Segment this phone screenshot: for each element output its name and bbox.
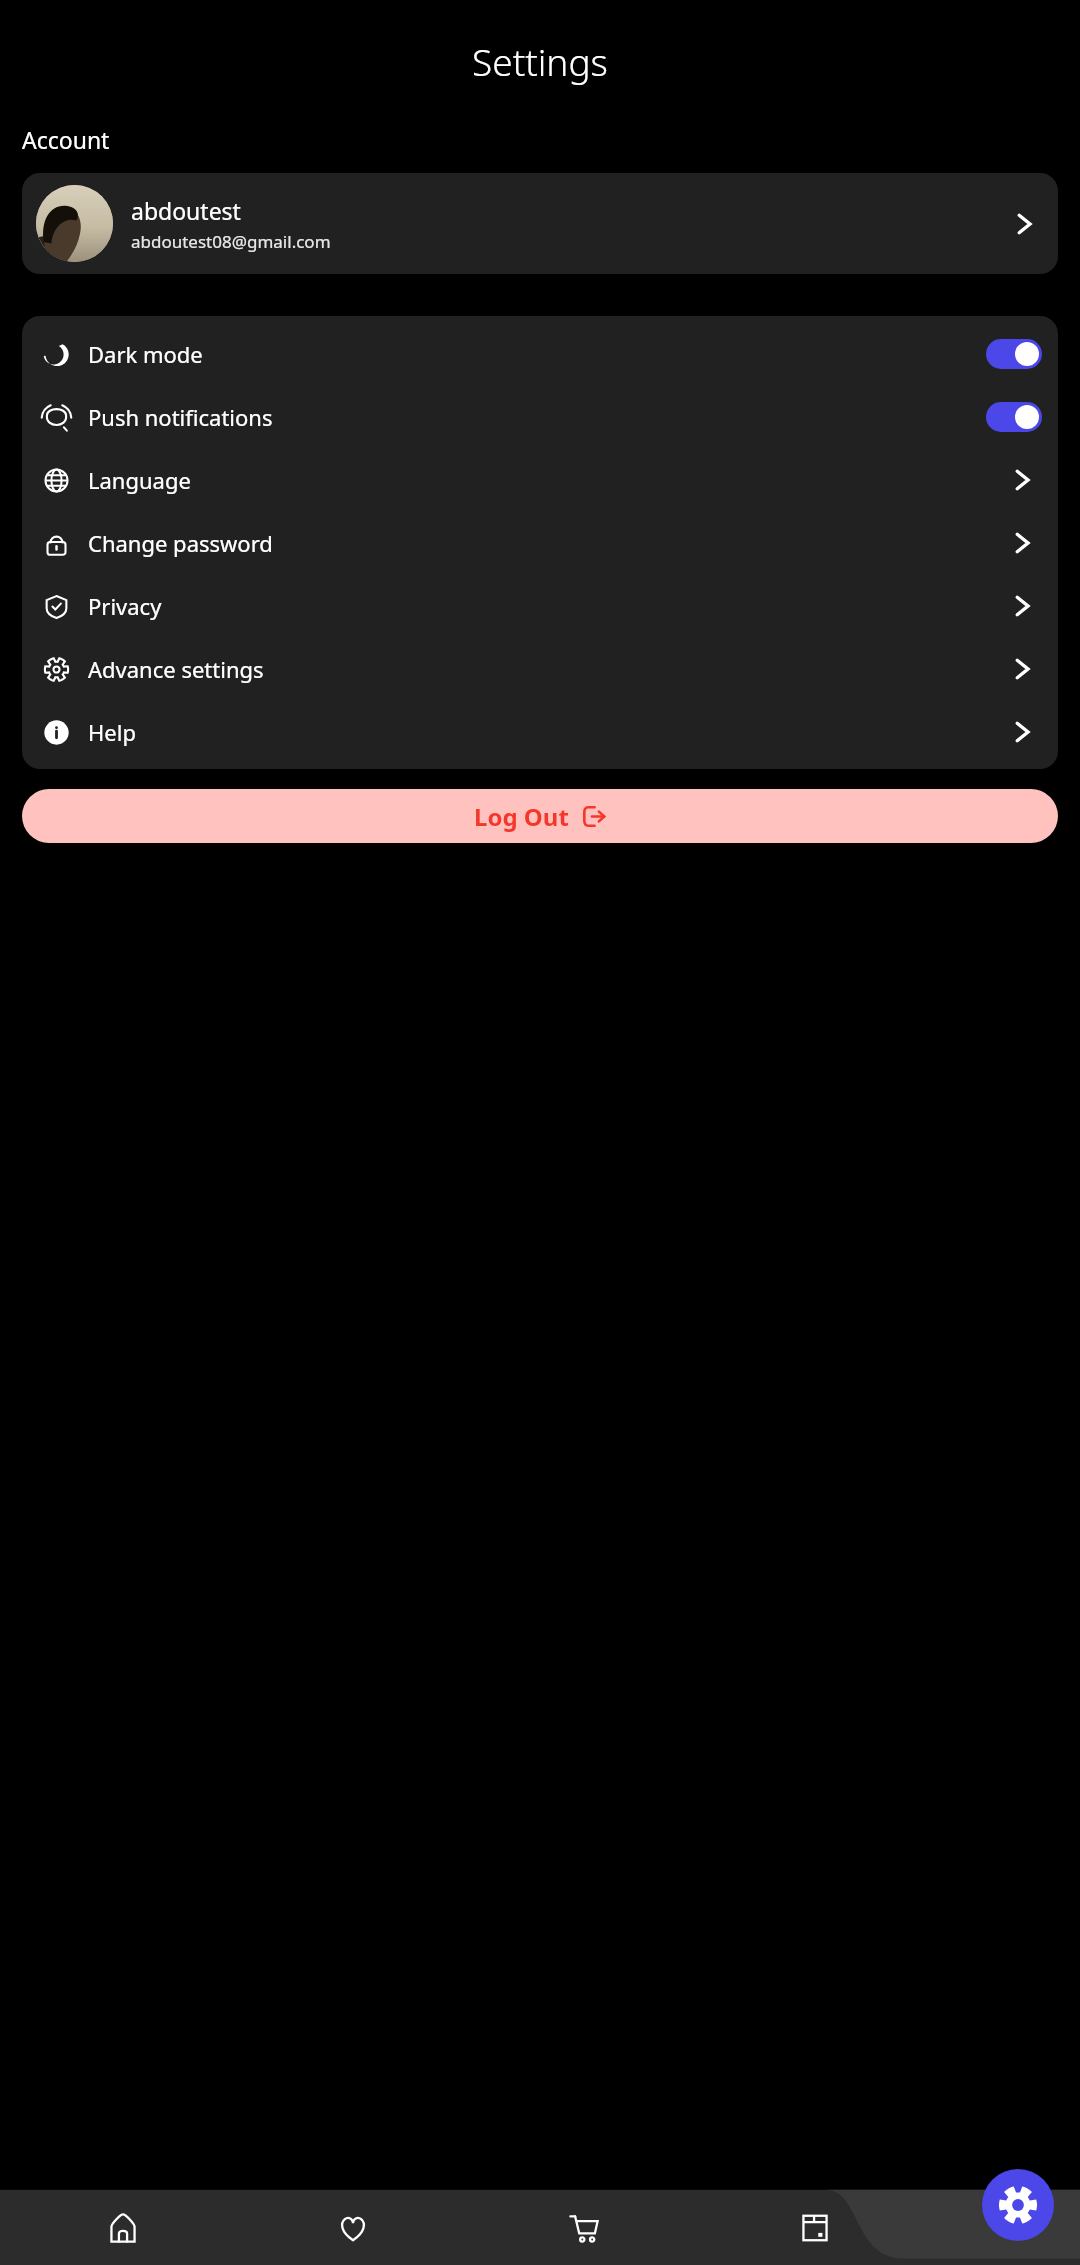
staticText: Push notifications (88, 402, 986, 432)
staticText: abdoutest08@gmail.com (131, 230, 331, 253)
button[interactable]: Help (22, 700, 1058, 763)
button[interactable]: Language (22, 448, 1058, 511)
button[interactable]: Push notifications toggle (986, 402, 1042, 432)
button[interactable]: Change password (22, 511, 1058, 574)
staticText: Settings (472, 36, 608, 86)
staticText: Log Out (474, 800, 569, 833)
staticText: Privacy (88, 591, 1002, 621)
button[interactable]: Orders (699, 2191, 930, 2265)
button[interactable]: abdoutest (22, 173, 1058, 274)
button[interactable]: Dark mode (22, 322, 1058, 385)
staticText: Language (88, 465, 1002, 495)
button[interactable]: Dark mode toggle (986, 339, 1042, 369)
staticText: Account (22, 124, 110, 155)
button[interactable]: Settings (982, 2169, 1054, 2241)
button[interactable]: Home (8, 2191, 238, 2265)
button[interactable]: Cart (468, 2191, 699, 2265)
staticText: Dark mode (88, 339, 986, 369)
staticText: abdoutest (131, 195, 241, 226)
button[interactable]: Privacy (22, 574, 1058, 637)
staticText: Change password (88, 528, 1002, 558)
staticText: Help (88, 717, 1002, 747)
button[interactable]: Advance settings (22, 637, 1058, 700)
button[interactable]: Favorites (238, 2191, 468, 2265)
staticText: Advance settings (88, 654, 1002, 684)
button[interactable]: Log Out (22, 789, 1058, 843)
button[interactable]: Push notifications (22, 385, 1058, 448)
